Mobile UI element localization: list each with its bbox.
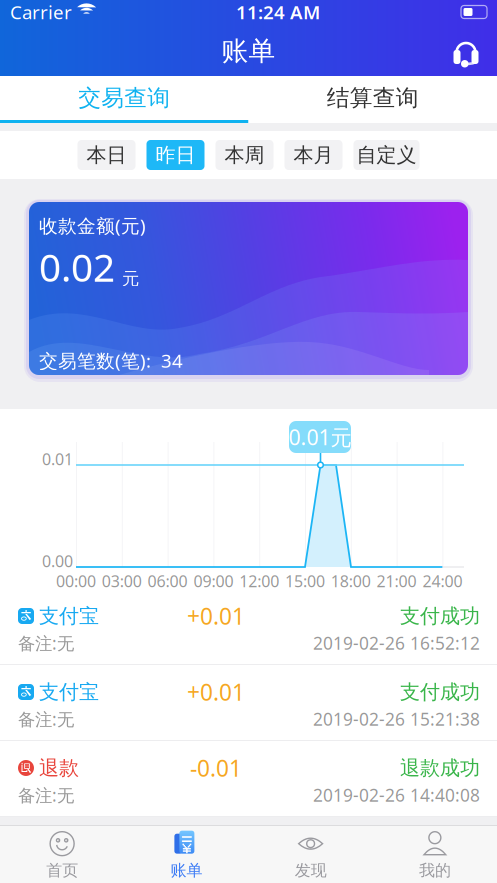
staticText: 0.00	[42, 550, 73, 572]
staticText: 账单	[221, 35, 275, 67]
button[interactable]: 首页	[0, 826, 124, 883]
staticText: 2019-02-26 14:40:08	[313, 783, 480, 806]
staticText: 备注:无	[18, 783, 74, 806]
staticText: 2019-02-26 15:21:38	[313, 707, 480, 730]
staticText: 03:00	[102, 570, 142, 592]
staticText: 21:00	[377, 570, 417, 592]
staticText: 2019-02-26 16:52:12	[313, 631, 480, 654]
button[interactable]: 退款	[0, 741, 497, 817]
button[interactable]: 本周	[215, 140, 273, 170]
staticText: 24:00	[422, 570, 462, 592]
staticText: 自定义	[356, 143, 416, 167]
staticText: 退款成功	[400, 756, 480, 780]
staticText: 备注:无	[18, 631, 74, 654]
staticText: 09:00	[193, 570, 233, 592]
staticText: 交易查询	[78, 84, 170, 112]
staticText: 首页	[46, 861, 78, 880]
staticText: 我的	[419, 861, 451, 880]
staticText: 18:00	[331, 570, 371, 592]
staticText: 结算查询	[327, 84, 419, 112]
staticText: 退款	[39, 756, 79, 780]
staticText: 11:24 AM	[236, 0, 320, 24]
staticText: +0.01	[187, 677, 245, 707]
button[interactable]: 账单	[124, 826, 248, 883]
staticText: 支付成功	[400, 604, 480, 628]
button[interactable]: 自定义	[353, 140, 419, 170]
button[interactable]: 发现	[248, 826, 373, 883]
staticText: 本周	[224, 143, 264, 167]
staticText: 12:00	[239, 570, 279, 592]
button[interactable]: 支付宝	[0, 589, 497, 665]
staticText: 0.01	[42, 448, 73, 470]
staticText: 发现	[295, 861, 327, 880]
staticText: 收款金额(元)	[39, 213, 146, 238]
button[interactable]: 昨日	[146, 140, 204, 170]
button[interactable]: 我的	[373, 826, 497, 883]
staticText: 支付宝	[39, 604, 99, 628]
staticText: 支付成功	[400, 680, 480, 704]
staticText: -0.01	[190, 753, 242, 783]
staticText: 备注:无	[18, 707, 74, 730]
button[interactable]: 本月	[284, 140, 342, 170]
staticText: 0.02	[39, 241, 115, 292]
button[interactable]: 交易查询	[0, 76, 248, 120]
staticText: 0.01元	[288, 423, 351, 451]
staticText: 支付宝	[39, 680, 99, 704]
button[interactable]: 本日	[77, 140, 135, 170]
staticText: 15:00	[285, 570, 325, 592]
staticText: 00:00	[56, 570, 96, 592]
staticText: Carrier	[10, 0, 72, 24]
staticText: 本日	[86, 143, 126, 167]
staticText: 昨日	[155, 143, 195, 167]
staticText: 本月	[293, 143, 333, 167]
staticText: 元	[122, 268, 139, 289]
button[interactable]: 支付宝	[0, 665, 497, 741]
staticText: 交易笔数(笔): 34	[39, 348, 183, 373]
staticText: 06:00	[148, 570, 188, 592]
button[interactable]: 结算查询	[248, 76, 497, 120]
button[interactable]: Customer service	[449, 34, 483, 68]
staticText: 账单	[170, 861, 202, 880]
staticText: +0.01	[187, 601, 245, 631]
